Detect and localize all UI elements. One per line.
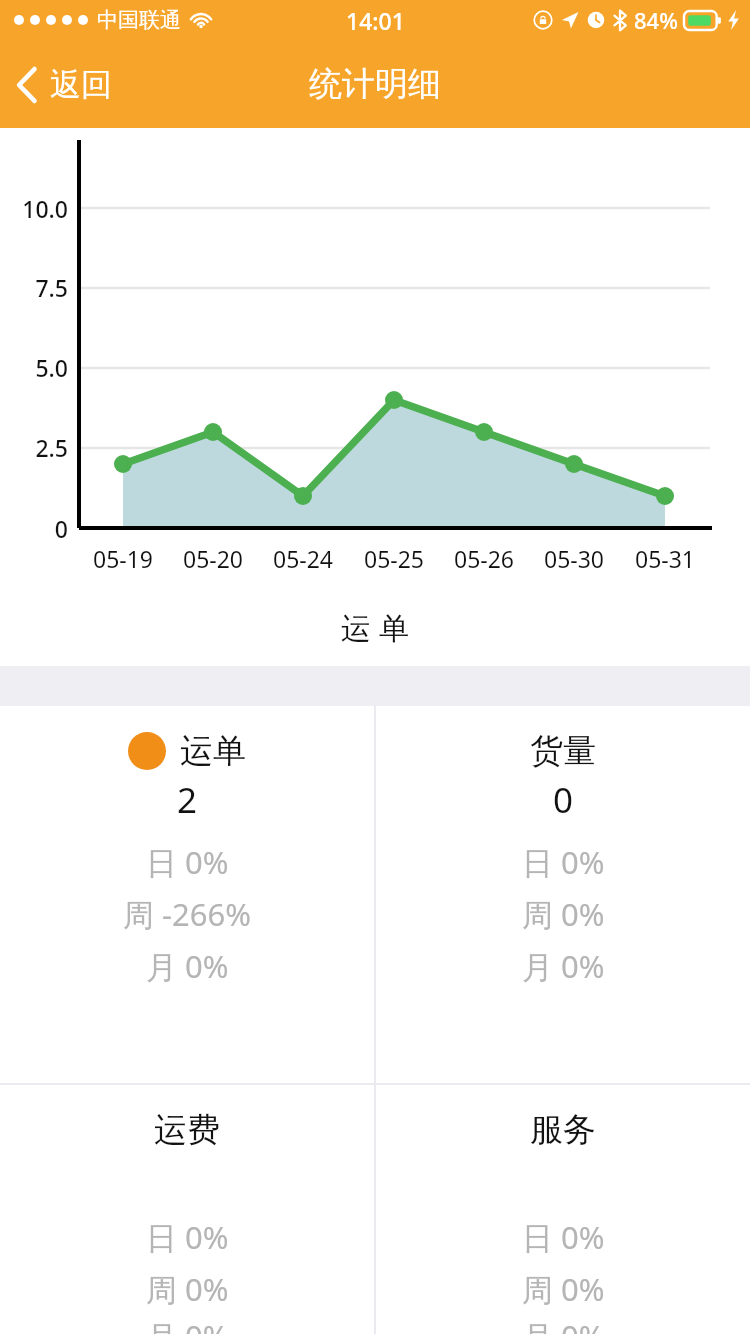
staticText: 日 0% xyxy=(522,841,605,883)
staticText: 月 0% xyxy=(146,945,229,987)
staticText: 2.5 xyxy=(0,432,68,463)
staticText: 月 0% xyxy=(146,1315,229,1334)
button[interactable]: 服务 xyxy=(376,1085,750,1334)
staticText: 05-31 xyxy=(610,543,720,574)
staticText: 运单 xyxy=(180,730,246,772)
staticText: 0 xyxy=(0,513,68,544)
staticText: 05-30 xyxy=(519,543,629,574)
staticText: 0 xyxy=(553,776,574,824)
staticText: 05-25 xyxy=(339,543,449,574)
staticText: 月 0% xyxy=(522,945,605,987)
staticText: 05-20 xyxy=(158,543,268,574)
button[interactable]: 返回 xyxy=(0,55,128,114)
staticText: 05-26 xyxy=(429,543,539,574)
button[interactable]: 运费 xyxy=(0,1085,374,1334)
staticText: 周 0% xyxy=(522,893,605,935)
staticText: 周 -266% xyxy=(123,893,251,935)
staticText: 14:01 xyxy=(346,5,405,36)
staticText: 货量 xyxy=(530,730,596,772)
staticText: 84% xyxy=(634,5,678,35)
staticText: 运 单 xyxy=(0,607,750,648)
staticText: 5.0 xyxy=(0,352,68,383)
staticText: 日 0% xyxy=(146,841,229,883)
staticText: 日 0% xyxy=(146,1216,229,1258)
staticText: 日 0% xyxy=(522,1216,605,1258)
staticText: 7.5 xyxy=(0,272,68,303)
staticText: 周 0% xyxy=(522,1268,605,1310)
button[interactable]: 货量 xyxy=(376,706,750,1083)
staticText: 05-24 xyxy=(248,543,358,574)
staticText: 返回 xyxy=(50,65,112,104)
staticText: 运费 xyxy=(154,1109,220,1151)
staticText: 10.0 xyxy=(0,193,68,224)
staticText: 中国联通 xyxy=(97,7,181,33)
staticText: 统计明细 xyxy=(309,63,441,105)
staticText: 05-19 xyxy=(68,543,178,574)
staticText: 服务 xyxy=(530,1109,596,1151)
staticText: 2 xyxy=(177,776,198,824)
button[interactable]: 运单 xyxy=(0,706,374,1083)
staticText: 月 0% xyxy=(522,1315,605,1334)
staticText: 周 0% xyxy=(146,1268,229,1310)
